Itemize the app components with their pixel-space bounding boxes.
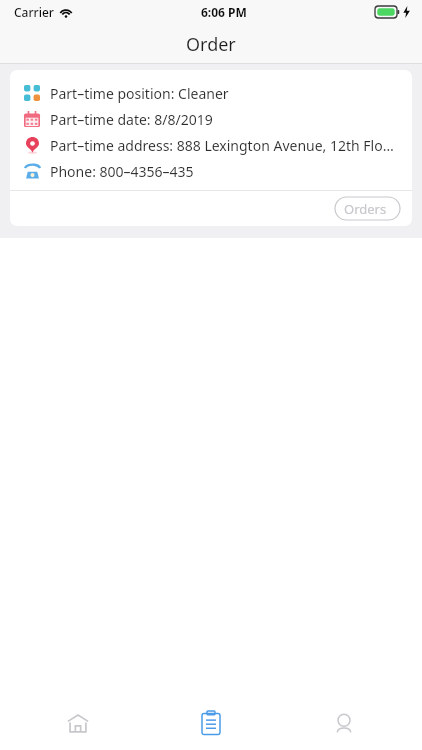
button[interactable]: Profile [289,695,399,750]
button[interactable]: Orders [331,196,400,222]
button[interactable]: Phone: 800–4356–435 [10,158,412,184]
staticText: Part–time position: Cleaner [50,84,229,103]
staticText: Orders [344,200,387,218]
staticText: Carrier [14,4,54,20]
staticText: 6:06 PM [201,4,247,20]
button[interactable]: Orders [156,695,266,750]
staticText: Order [186,32,236,57]
button[interactable]: Home [23,695,133,750]
staticText: Part–time date: 8/8/2019 [50,110,213,129]
button[interactable]: Part–time position: Cleaner [10,80,412,106]
staticText: Phone: 800–4356–435 [50,162,194,181]
button[interactable]: Part–time date: 8/8/2019 [10,106,412,132]
staticText: Part–time address: 888 Lexington Avenue,… [50,136,400,155]
button[interactable]: Part–time address: 888 Lexington Avenue,… [10,132,412,158]
